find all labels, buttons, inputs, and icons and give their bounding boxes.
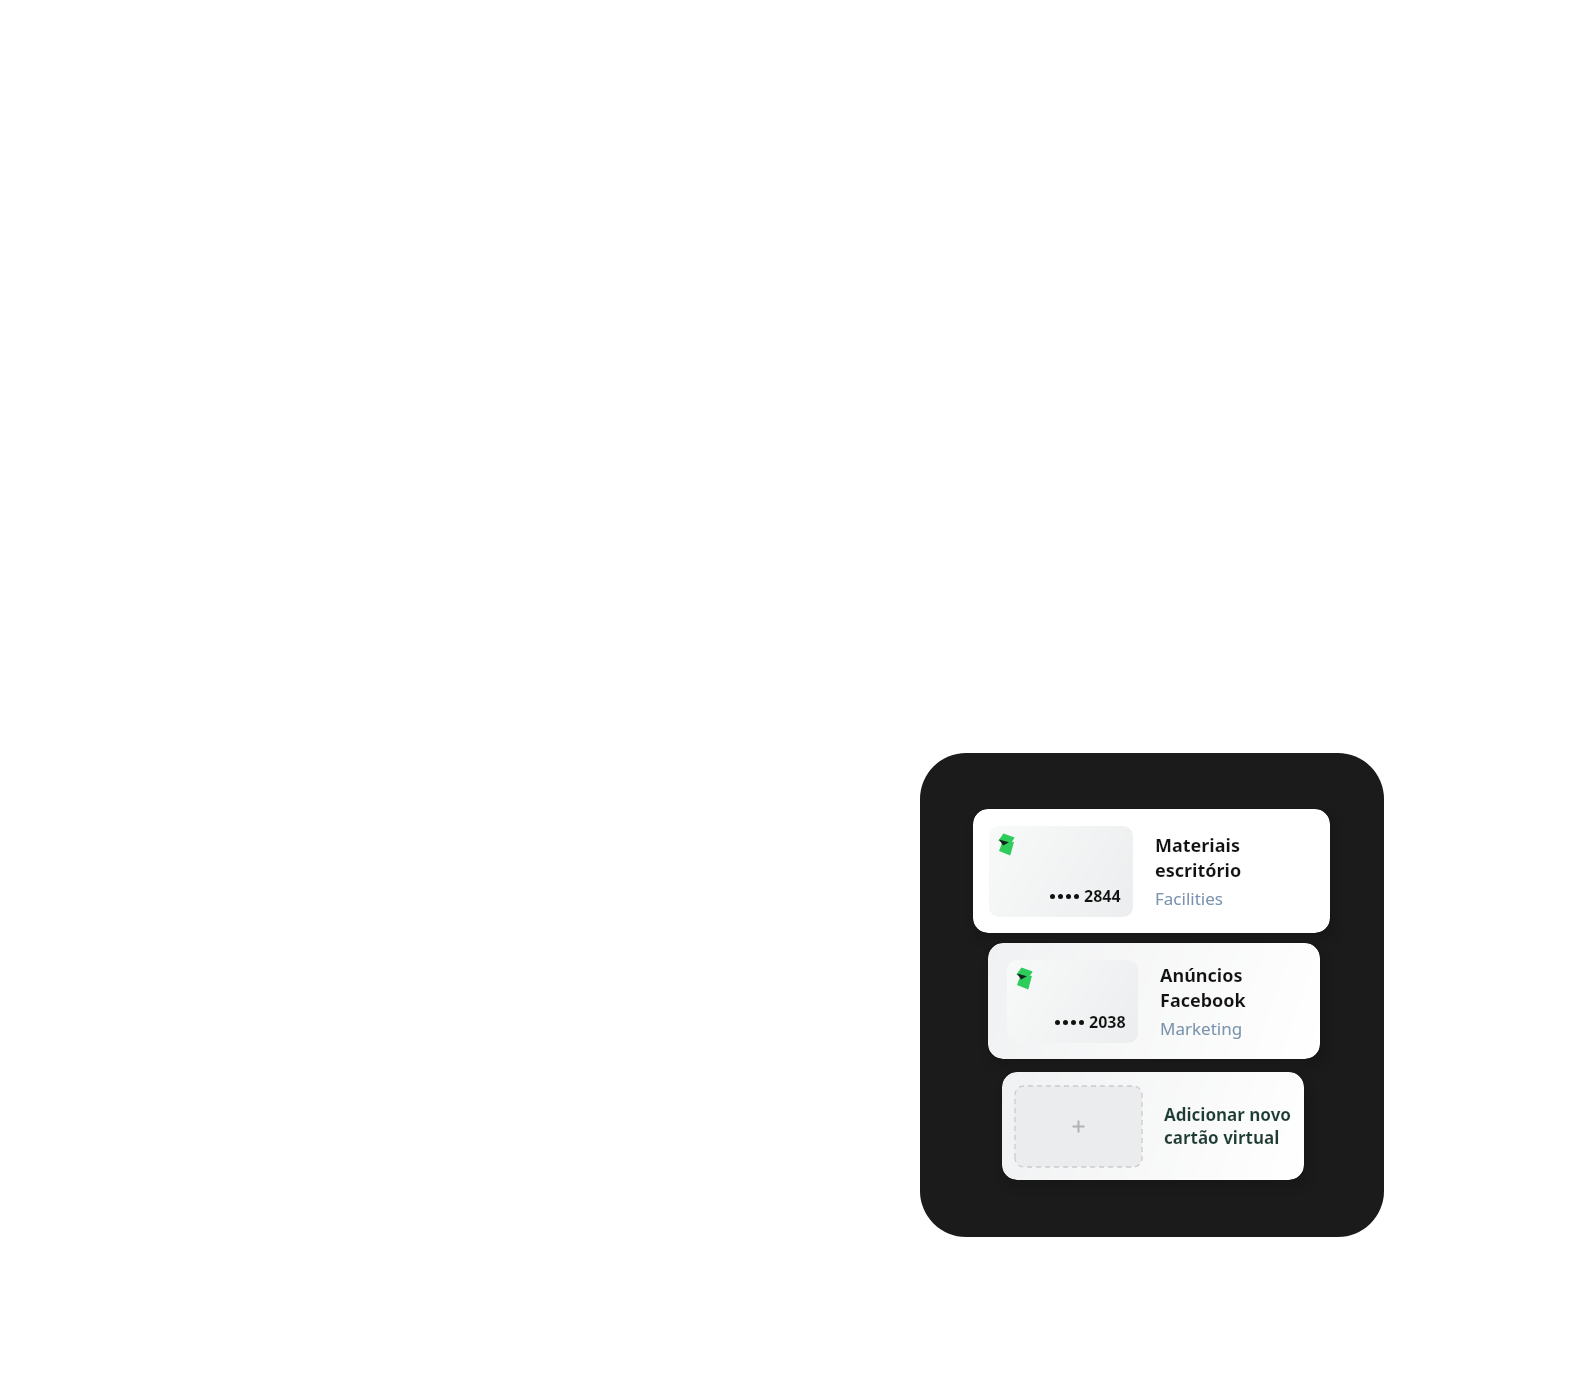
staticText: Marketing xyxy=(1160,1017,1243,1040)
staticText: cartão virtual xyxy=(1164,1126,1280,1149)
staticText: Materiais escritório xyxy=(1155,833,1330,883)
staticText: Anúncios Facebook xyxy=(1160,963,1320,1013)
staticText: Facilities xyxy=(1155,887,1223,910)
staticText: 2038 xyxy=(1089,1011,1126,1033)
staticText: 2844 xyxy=(1084,885,1121,907)
other: Adicionar novo cartão virtual xyxy=(1015,1086,1142,1167)
button[interactable]: 2038 xyxy=(988,943,1320,1059)
button[interactable]: Adicionar novo cartão virtual xyxy=(1002,1072,1304,1180)
button[interactable]: 2844 xyxy=(973,809,1330,933)
staticText: Adicionar novo xyxy=(1164,1103,1291,1126)
